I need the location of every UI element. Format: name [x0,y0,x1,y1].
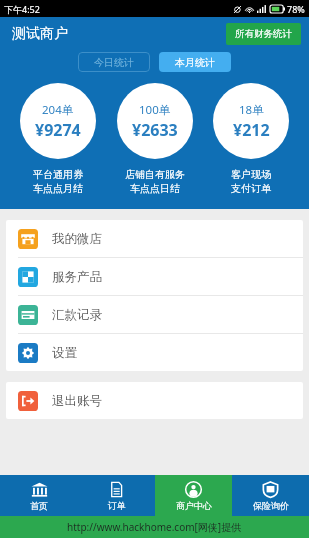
button[interactable]: 服务产品 [6,258,303,295]
staticText: 所有财务统计 [235,28,292,40]
staticText: 78% [287,3,305,15]
button[interactable]: 204单 [20,83,96,159]
button[interactable]: 我的微店 [6,220,303,257]
button[interactable]: 订单 [78,475,155,516]
staticText: 支付订单 [231,182,271,195]
staticText: 车点点月结 [33,182,83,195]
staticText: 204单 [42,102,74,118]
staticText: 我的微店 [52,231,102,247]
staticText: ¥9274 [35,119,81,141]
staticText: 服务产品 [52,269,102,285]
staticText: 18单 [239,102,264,118]
staticText: 退出账号 [52,393,102,409]
staticText: 今日统计 [94,56,134,69]
staticText: ¥2633 [132,119,178,141]
button[interactable]: 汇款记录 [6,296,303,333]
staticText: 保险询价 [253,500,289,511]
staticText: 汇款记录 [52,307,102,323]
staticText: 平台通用券 [33,168,83,181]
staticText: http://www.hackhome.com[网侠]提供 [67,520,242,534]
staticText: 测试商户 [12,25,68,43]
button[interactable]: 所有财务统计 [226,23,301,45]
staticText: 商户中心 [176,500,212,511]
button[interactable]: 退出账号 [6,382,303,419]
staticText: 设置 [52,345,77,361]
staticText: 订单 [108,500,126,511]
staticText: 首页 [30,500,48,511]
staticText: 店铺自有服务 [125,168,185,181]
staticText: 客户现场 [231,168,271,181]
button[interactable]: 今日统计 [78,52,150,72]
button[interactable]: 保险询价 [232,475,309,516]
staticText: 100单 [139,102,171,118]
staticText: 本月统计 [175,56,215,69]
button[interactable]: 设置 [6,334,303,371]
staticText: ¥212 [233,119,270,141]
button[interactable]: 18单 [213,83,289,159]
staticText: 下午4:52 [4,3,40,15]
staticText: 车点点日结 [130,182,180,195]
button[interactable]: 本月统计 [159,52,231,72]
button[interactable]: 100单 [117,83,193,159]
button[interactable]: 首页 [0,475,78,516]
button[interactable]: 商户中心 [155,475,232,516]
